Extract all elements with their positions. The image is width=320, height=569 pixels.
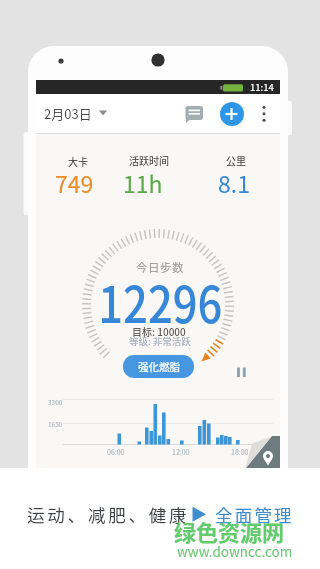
button[interactable] <box>256 102 272 126</box>
staticText: 3300 <box>48 397 63 406</box>
staticText: 2月03日 <box>44 104 92 123</box>
staticText: 目标: 10000 <box>132 324 186 338</box>
staticText: 12296 <box>98 265 223 337</box>
staticText: 12:00 <box>172 447 190 457</box>
staticText: 749 <box>55 166 94 199</box>
staticText: 18:00 <box>231 447 249 457</box>
staticText: 11h <box>123 166 163 199</box>
staticText: 大卡 <box>68 154 88 168</box>
staticText: www.downcc.com <box>177 541 293 561</box>
staticText: 今日步数 <box>136 259 184 276</box>
staticText: 全面管理 <box>215 502 294 527</box>
staticText: 11:14 <box>250 80 274 94</box>
button[interactable]: 强化燃脂 <box>123 355 194 378</box>
staticText: 运动、减肥、健康 <box>27 502 190 527</box>
button[interactable] <box>220 102 244 126</box>
staticText: 强化燃脂 <box>138 359 180 374</box>
staticText: 等级: 非常活跃 <box>129 334 191 348</box>
staticText: 06:00 <box>107 447 125 457</box>
staticText: 活跃时间 <box>129 153 169 167</box>
button[interactable] <box>40 98 112 129</box>
button[interactable] <box>233 363 250 381</box>
staticText: 绿色资源网 <box>174 515 285 547</box>
button[interactable] <box>183 103 206 126</box>
staticText: 8.1 <box>218 166 250 199</box>
staticText: 1650 <box>48 419 63 428</box>
staticText: 公里 <box>226 153 246 167</box>
